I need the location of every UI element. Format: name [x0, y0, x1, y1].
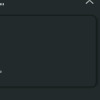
button[interactable]: Collapse — [84, 0, 96, 8]
